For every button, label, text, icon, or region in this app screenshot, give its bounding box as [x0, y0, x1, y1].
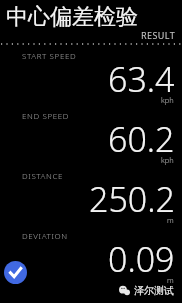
staticText: 0.09 — [108, 236, 175, 282]
staticText: m — [167, 275, 174, 285]
staticText: kph — [161, 155, 174, 165]
staticText: 250.2 — [89, 176, 175, 222]
staticText: 泽尔测试 — [134, 284, 174, 297]
staticText: kph — [161, 95, 174, 105]
button[interactable]: START SPEED — [0, 49, 182, 109]
button[interactable]: END SPEED — [0, 109, 182, 169]
staticText: 63.4 — [108, 56, 175, 102]
staticText: DEVIATION — [22, 230, 68, 241]
staticText: START SPEED — [22, 50, 77, 61]
staticText: m — [167, 215, 174, 225]
staticText: 60.2 — [108, 116, 175, 162]
staticText: END SPEED — [22, 110, 70, 121]
button[interactable]: DEVIATION — [0, 229, 182, 289]
staticText: RESULT — [141, 29, 176, 41]
button[interactable]: DISTANCE — [0, 169, 182, 229]
staticText: DISTANCE — [22, 170, 64, 181]
staticText: 中心偏差检验 — [6, 3, 138, 31]
button[interactable]: Test passed — [4, 261, 27, 284]
